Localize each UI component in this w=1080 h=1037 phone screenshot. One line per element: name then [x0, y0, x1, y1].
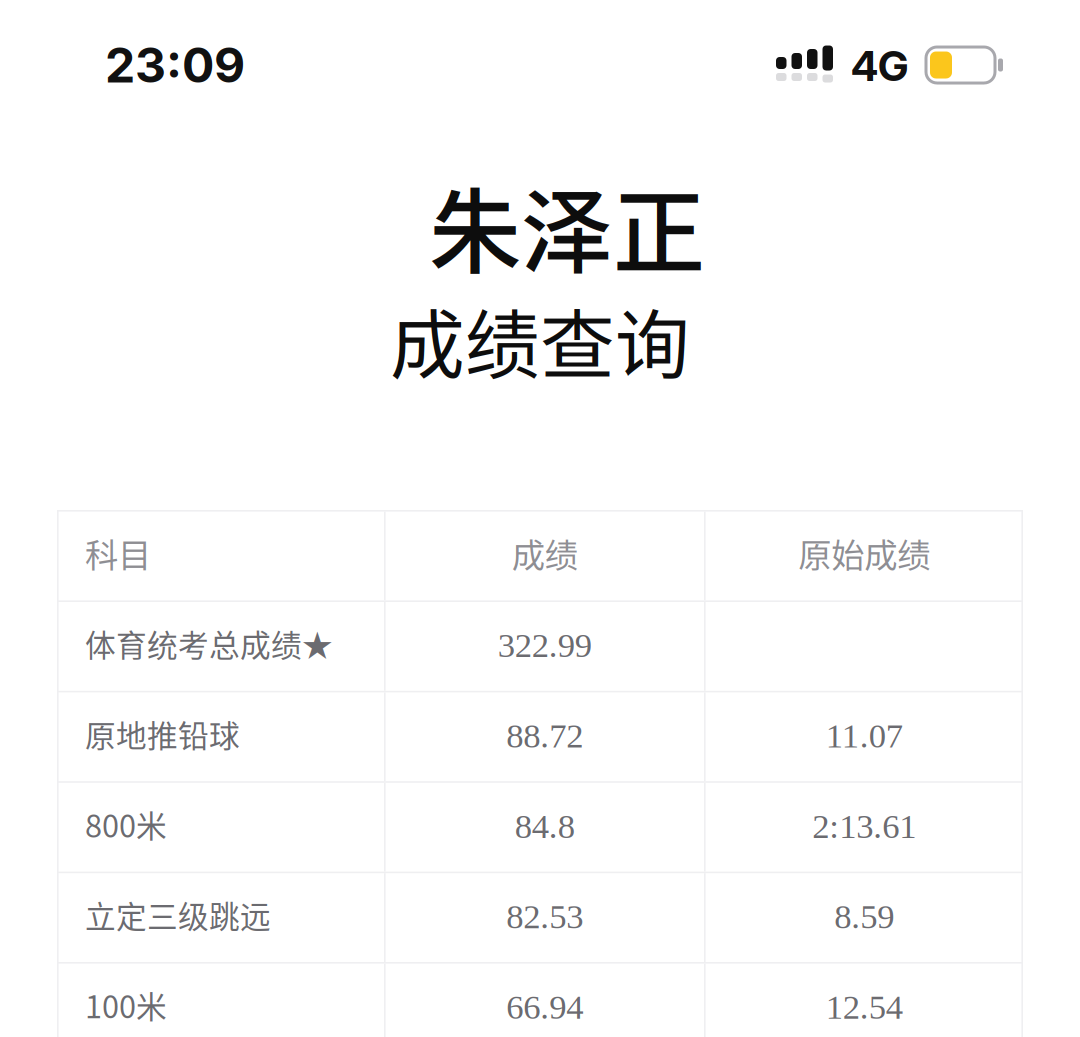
staticText: 成绩 [512, 529, 578, 577]
staticText: 11.07 [826, 717, 903, 755]
staticText: 84.8 [515, 807, 575, 845]
button[interactable]: 立定三级跳远 [57, 873, 1023, 962]
staticText: 科目 [85, 529, 151, 577]
staticText: 322.99 [498, 626, 592, 665]
staticText: 100米 [85, 983, 167, 1027]
staticText: 成绩查询 [390, 286, 690, 394]
staticText: 800米 [85, 802, 167, 846]
button[interactable]: 原地推铅球 [57, 692, 1023, 781]
staticText: 4G [851, 41, 908, 91]
staticText: 体育统考总成绩★ [85, 621, 333, 666]
staticText: 88.72 [506, 717, 583, 755]
staticText: 2:13.61 [812, 807, 916, 845]
staticText: 66.94 [506, 988, 583, 1026]
staticText: 12.54 [826, 988, 903, 1026]
staticText: 8.59 [834, 897, 894, 936]
button[interactable]: 100米 [57, 964, 1023, 1037]
staticText: 82.53 [506, 897, 583, 936]
staticText: 原始成绩 [798, 529, 930, 577]
button[interactable]: 体育统考总成绩★ [57, 602, 1023, 691]
staticText: 23:09 [105, 36, 245, 94]
button[interactable]: 800米 [57, 783, 1023, 872]
staticText: 朱泽正 [429, 159, 705, 292]
staticText: 立定三级跳远 [85, 892, 271, 937]
staticText: 原地推铅球 [85, 712, 240, 756]
